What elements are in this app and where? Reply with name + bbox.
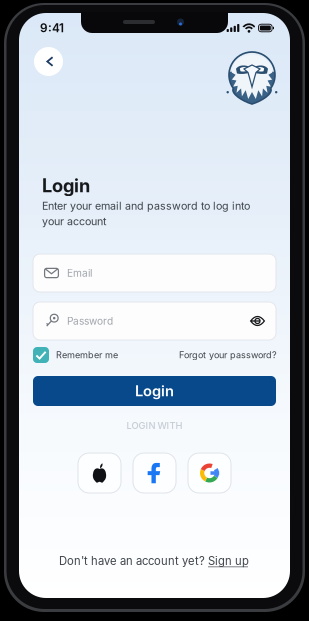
staticText: Password: [67, 315, 113, 327]
staticText: your account: [42, 215, 106, 228]
staticText: Login: [135, 382, 174, 400]
button[interactable]: Remember me: [33, 346, 118, 364]
staticText: LOGIN WITH: [126, 420, 182, 431]
staticText: Email: [67, 267, 92, 279]
button[interactable]: Sign in with Facebook: [133, 453, 176, 493]
button[interactable]: Sign in with Google: [188, 453, 231, 493]
button[interactable]: Back: [34, 47, 63, 76]
staticText: Enter your email and password to log int…: [42, 199, 250, 212]
staticText: Login: [42, 175, 90, 196]
staticText: Forgot your password?: [179, 350, 277, 360]
button[interactable]: Show password: [250, 313, 265, 328]
button[interactable]: Forgot your password?: [179, 346, 277, 364]
staticText: Remember me: [56, 350, 118, 360]
button[interactable]: Sign up: [208, 554, 250, 567]
button[interactable]: Sign in with Apple: [78, 453, 121, 493]
staticText: Don't have an account yet?: [59, 554, 208, 568]
staticText: Sign up: [208, 554, 249, 568]
staticText: 9:41: [40, 21, 64, 35]
button[interactable]: Login: [33, 376, 276, 406]
